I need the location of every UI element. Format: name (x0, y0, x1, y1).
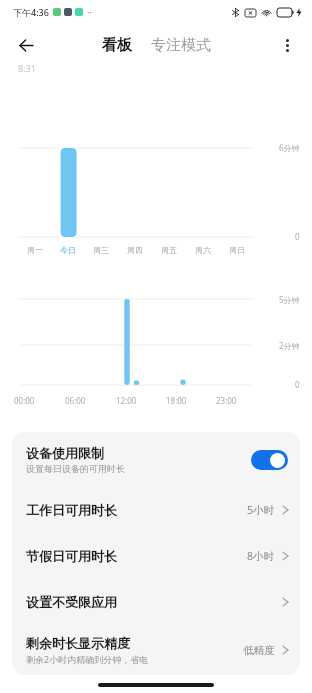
staticText: 剩余2小时内精确到分钟，省电 (26, 653, 149, 665)
staticText: 12:00 (116, 395, 137, 406)
staticText: 设置不受限应用 (26, 594, 117, 610)
button[interactable]: 设备使用限制 (12, 432, 300, 487)
staticText: 周六 (195, 245, 211, 255)
staticText: 8小时 (247, 549, 275, 563)
button[interactable]: 节假日可用时长 (12, 533, 300, 579)
staticText: 5分钟 (279, 294, 300, 305)
staticText: 06:00 (65, 395, 86, 406)
button[interactable]: 设备使用限制开关 (251, 450, 288, 470)
button[interactable]: 看板 (98, 34, 136, 57)
button[interactable]: 设置不受限应用 (12, 579, 300, 625)
staticText: 00:00 (14, 395, 35, 406)
staticText: 设备使用限制 (26, 445, 104, 461)
staticText: 工作日可用时长 (26, 502, 117, 518)
staticText: 5小时 (247, 503, 275, 517)
staticText: 设置每日设备的可用时长 (26, 463, 125, 474)
button[interactable]: 专注模式 (147, 34, 215, 57)
staticText: 周日 (229, 245, 245, 255)
staticText: 8:31 (18, 62, 36, 74)
staticText: 周三 (93, 245, 109, 255)
staticText: 专注模式 (151, 36, 211, 55)
staticText: 剩余时长显示精度 (26, 635, 130, 651)
staticText: 2分钟 (279, 340, 300, 351)
staticText: 6分钟 (279, 142, 300, 153)
staticText: 节假日可用时长 (26, 548, 117, 564)
staticText: 0 (295, 231, 300, 242)
staticText: 周一 (27, 245, 43, 255)
staticText: 看板 (102, 36, 132, 55)
button[interactable]: 剩余时长显示精度 (12, 625, 300, 675)
staticText: 0 (295, 379, 300, 390)
staticText: 18:00 (166, 395, 187, 406)
staticText: 周五 (161, 245, 177, 255)
staticText: 今日 (60, 245, 76, 255)
button[interactable]: 返回 (8, 27, 44, 63)
staticText: 低精度 (243, 644, 275, 657)
button[interactable]: 更多选项 (270, 28, 304, 62)
staticText: 23:00 (216, 395, 237, 406)
staticText: 周四 (127, 245, 143, 255)
staticText: 下午4:36 (13, 6, 49, 18)
staticText: ·· (87, 6, 92, 18)
button[interactable]: 工作日可用时长 (12, 487, 300, 533)
